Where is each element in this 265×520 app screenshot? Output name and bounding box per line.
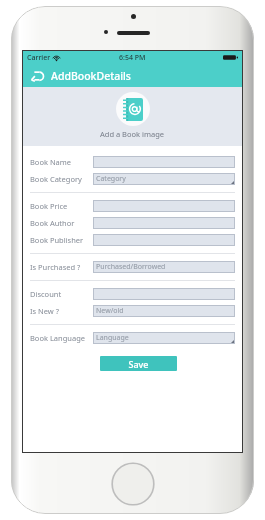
staticText: Book Category	[30, 174, 82, 184]
staticText: Discount	[30, 289, 62, 299]
staticText: Book Publisher	[30, 235, 84, 245]
button[interactable]: Book Author	[30, 214, 235, 231]
staticText: Add a Book image	[100, 129, 165, 139]
staticText: Is New ?	[30, 306, 59, 316]
staticText: Purchased/Borrowed	[96, 262, 166, 272]
button[interactable]: Book Price	[30, 197, 235, 214]
staticText: Carrier	[27, 53, 51, 63]
staticText: Book Author	[30, 218, 75, 228]
staticText: Book Price	[30, 201, 68, 211]
staticText: Save	[128, 358, 149, 370]
button[interactable]: Is New ?	[30, 302, 235, 319]
button[interactable]: Back	[28, 67, 46, 85]
button[interactable]: Save	[100, 356, 177, 371]
staticText: AddBookDetails	[51, 69, 131, 83]
button[interactable]: Book Category	[30, 170, 235, 187]
button[interactable]: Discount	[30, 285, 235, 302]
staticText: 6:54 PM	[119, 53, 146, 63]
staticText: Category	[96, 174, 126, 184]
button[interactable]: Book Name	[30, 153, 235, 170]
button[interactable]: Book Language	[30, 329, 235, 346]
staticText: Language	[96, 333, 129, 343]
staticText: Is Purchased ?	[30, 262, 81, 272]
other: Home	[111, 462, 155, 506]
staticText: Book Language	[30, 333, 85, 343]
staticText: Book Name	[30, 157, 72, 167]
button[interactable]: Add a Book image	[23, 87, 242, 146]
button[interactable]: Book Publisher	[30, 231, 235, 248]
button[interactable]: Is Purchased ?	[30, 258, 235, 275]
staticText: New/old	[96, 306, 124, 316]
